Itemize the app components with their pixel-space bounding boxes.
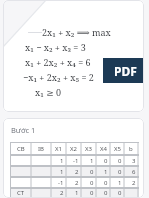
staticText: 1: [104, 168, 108, 176]
staticText: 1: [90, 157, 94, 165]
staticText: 6: [132, 168, 136, 176]
staticText: X2: [70, 145, 77, 153]
staticText: x₁ ≥ 0: [35, 86, 62, 98]
staticText: X3: [85, 145, 92, 153]
staticText: −x₁ + 2x₂ + x₅ = 2: [23, 71, 94, 83]
staticText: 0: [90, 189, 94, 197]
staticText: CT: [17, 189, 25, 197]
staticText: X4: [100, 145, 107, 153]
staticText: 2: [60, 189, 64, 197]
staticText: PDF: [114, 63, 137, 79]
staticText: 1: [60, 157, 64, 165]
staticText: b: [129, 145, 133, 153]
staticText: Bước 1: [11, 125, 36, 135]
staticText: 2: [75, 168, 79, 176]
staticText: IB: [38, 145, 44, 153]
staticText: x₁ + 2x₂ + x₄ = 6: [25, 56, 91, 68]
staticText: 1: [60, 168, 64, 176]
staticText: 1: [118, 179, 122, 187]
staticText: 0: [118, 168, 122, 176]
staticText: 0: [90, 168, 94, 176]
staticText: 1: [75, 189, 79, 197]
staticText: X1: [55, 145, 62, 153]
staticText: 0: [118, 157, 122, 165]
staticText: 2x₁ + x₂ ⟹ max: [42, 26, 111, 38]
staticText: 2: [75, 179, 79, 187]
staticText: 0: [104, 157, 108, 165]
staticText: 0: [90, 179, 94, 187]
staticText: X5: [114, 145, 121, 153]
button[interactable]: 2x₁ + x₂ ⟹ max: [3, 0, 144, 112]
staticText: 0: [104, 189, 108, 197]
button[interactable]: PDF document: [103, 58, 144, 83]
staticText: -1: [58, 179, 64, 187]
button[interactable]: Bước 1: [3, 118, 144, 198]
staticText: 2: [132, 179, 136, 187]
staticText: 0: [104, 179, 108, 187]
staticText: x₁ − x₂ + x₃ = 3: [25, 41, 86, 53]
staticText: 3: [132, 157, 136, 165]
staticText: -1: [73, 157, 79, 165]
staticText: 0: [118, 189, 122, 197]
staticText: CB: [17, 145, 25, 153]
